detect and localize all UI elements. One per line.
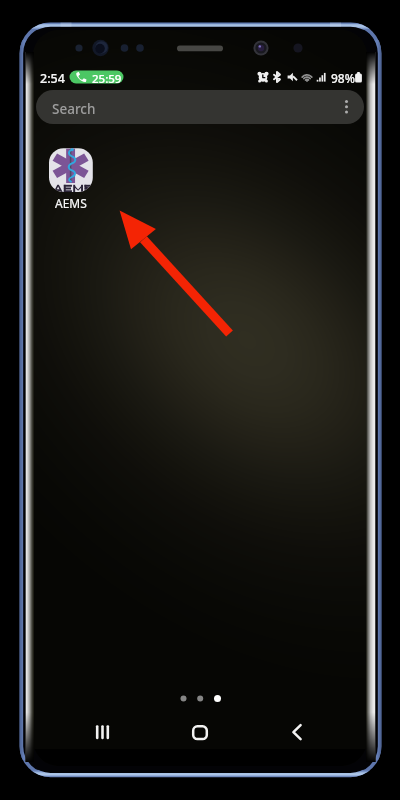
staticText: AEMS <box>55 195 87 211</box>
button[interactable]: Back <box>282 718 312 748</box>
staticText: 25:59 <box>92 71 122 87</box>
button[interactable] <box>36 90 364 124</box>
staticText: 98% <box>331 70 355 86</box>
button[interactable]: Recent apps <box>84 718 122 748</box>
button[interactable]: AEMS app <box>47 147 96 207</box>
button[interactable]: Home <box>184 718 216 748</box>
staticText: Search <box>52 100 96 118</box>
staticText: 2:54 <box>40 70 65 87</box>
